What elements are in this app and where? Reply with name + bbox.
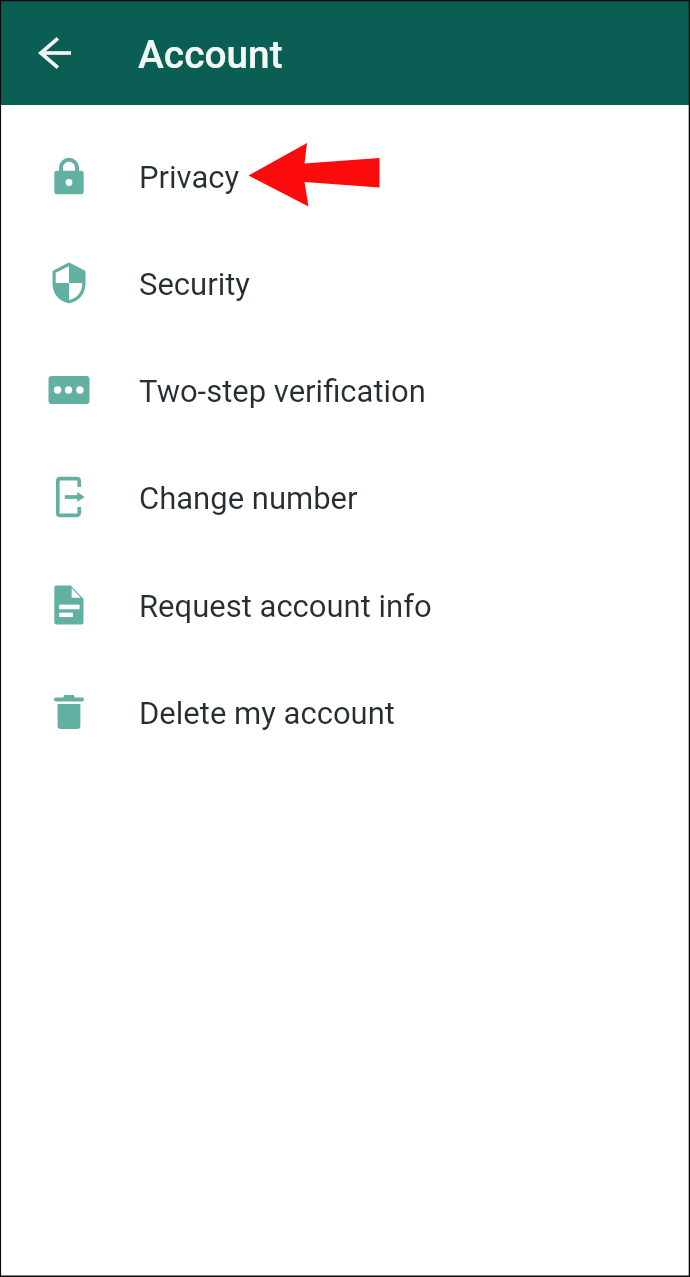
button[interactable]: Two-step verification [0, 342, 690, 449]
button[interactable]: Request account info [0, 557, 690, 664]
button[interactable]: Privacy [0, 128, 690, 235]
button[interactable]: Security [0, 235, 690, 342]
staticText: Change number [139, 480, 358, 516]
button[interactable]: Back [21, 19, 88, 86]
staticText: Account [138, 32, 283, 77]
staticText: Privacy [139, 159, 240, 195]
staticText: Request account info [139, 588, 432, 624]
staticText: Security [139, 266, 251, 302]
staticText: Delete my account [139, 695, 395, 731]
staticText: Two-step verification [139, 373, 426, 409]
button[interactable]: Delete my account [0, 664, 690, 771]
button[interactable]: Change number [0, 449, 690, 556]
